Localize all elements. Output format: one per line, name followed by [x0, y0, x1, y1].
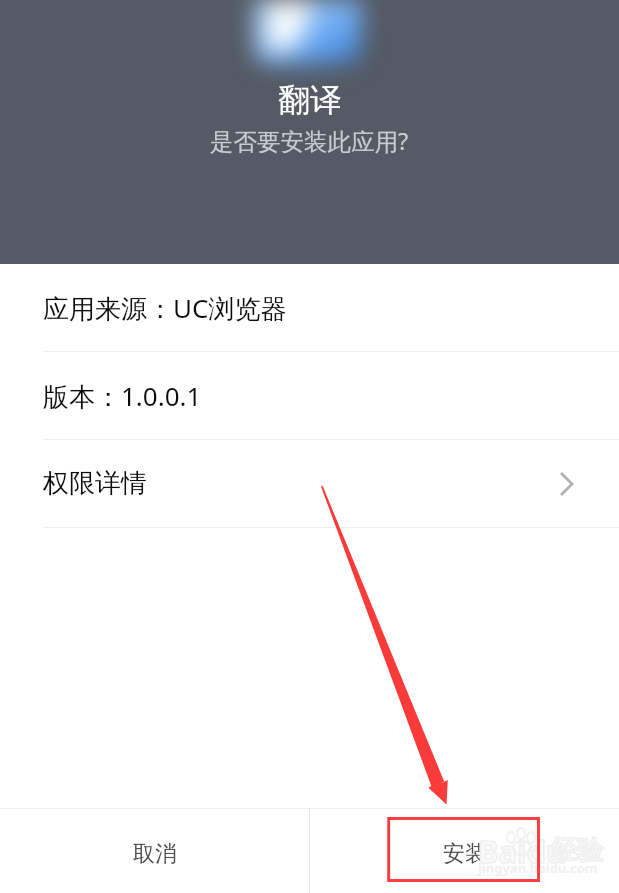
staticText: 经验	[551, 834, 603, 867]
staticText: 经验	[551, 834, 603, 867]
staticText: Baidu	[478, 830, 567, 872]
staticText: jingyan.baidu.com	[478, 859, 598, 877]
staticText: 是否要安装此应用?	[210, 125, 409, 157]
other: Permission details	[562, 474, 572, 494]
staticText: 取消	[133, 840, 177, 868]
button[interactable]: 版本：1.0.0.1	[0, 352, 619, 439]
staticText: 翻译	[278, 80, 342, 120]
staticText: Baidu	[478, 830, 567, 872]
staticText: 版本：1.0.0.1	[43, 378, 202, 414]
button[interactable]: 权限详情	[0, 440, 619, 527]
staticText: 权限详情	[43, 467, 147, 500]
button[interactable]: 安装	[310, 809, 619, 893]
button[interactable]: 取消	[0, 809, 309, 893]
staticText: 安装	[443, 840, 487, 868]
staticText: 应用来源：UC浏览器	[43, 290, 287, 326]
button[interactable]: 应用来源：UC浏览器	[0, 264, 619, 351]
